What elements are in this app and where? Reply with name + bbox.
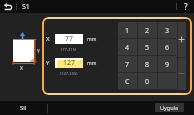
staticText: 7 <box>125 60 130 70</box>
staticText: 5 <box>145 43 150 53</box>
button[interactable]: 3 <box>158 22 177 39</box>
button[interactable]: Help <box>177 0 194 13</box>
staticText: (127-355) <box>60 71 78 76</box>
button[interactable]: Decrease <box>177 57 186 90</box>
button[interactable]: Uygula <box>155 103 184 112</box>
button[interactable]: 4 <box>118 39 137 56</box>
staticText: Y <box>37 48 40 55</box>
staticText: 8 <box>145 60 150 70</box>
staticText: 0 <box>145 77 150 87</box>
staticText: 4 <box>125 43 130 53</box>
button[interactable]: 127 <box>55 58 83 68</box>
staticText: S1 <box>22 2 30 12</box>
staticText: mm <box>87 60 97 67</box>
button[interactable]: 6 <box>158 39 177 56</box>
staticText: 6 <box>165 43 170 53</box>
button[interactable]: 2 <box>138 22 157 39</box>
staticText: X <box>20 65 23 72</box>
staticText: 9 <box>165 60 170 70</box>
button[interactable]: 5 <box>138 39 157 56</box>
button[interactable]: Increase <box>177 22 186 57</box>
button[interactable]: 0 <box>138 73 157 90</box>
button[interactable] <box>158 73 177 90</box>
staticText: 3 <box>165 26 170 36</box>
button[interactable]: 77 <box>55 34 83 44</box>
button[interactable]: 7 <box>118 56 137 73</box>
staticText: ? <box>184 1 188 12</box>
staticText: 127 <box>63 58 76 68</box>
staticText: 1 <box>125 26 130 36</box>
button[interactable]: 9 <box>158 56 177 73</box>
button[interactable]: Sil <box>0 101 47 115</box>
staticText: X <box>46 35 50 43</box>
button[interactable]: 8 <box>138 56 157 73</box>
staticText: 77 <box>65 34 74 44</box>
button[interactable]: C <box>118 73 137 90</box>
staticText: (77-215) <box>61 47 77 52</box>
staticText: Uygula <box>160 104 179 111</box>
staticText: Y <box>46 59 50 67</box>
staticText: Sil <box>20 104 27 112</box>
staticText: 2 <box>145 26 150 36</box>
button[interactable]: 1 <box>118 22 137 39</box>
staticText: mm <box>87 36 97 43</box>
button[interactable]: Back <box>0 0 16 13</box>
staticText: C <box>125 77 130 87</box>
